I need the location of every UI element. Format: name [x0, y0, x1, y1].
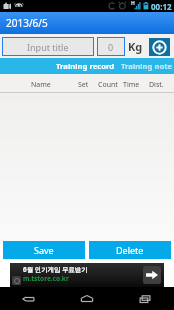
button[interactable]: Input title: [2, 37, 94, 56]
button[interactable]: Back: [0, 287, 58, 310]
staticText: H: [131, 0, 135, 7]
staticText: Training note: [121, 61, 173, 71]
staticText: 0: [108, 41, 114, 53]
button[interactable]: Save: [3, 241, 85, 259]
staticText: Training record: [56, 61, 115, 71]
staticText: Kg: [128, 39, 143, 54]
staticText: m.tstore.co.kr: [23, 274, 69, 283]
staticText: Delete: [116, 244, 144, 256]
staticText: 6월 인기게임 무료받기: [23, 265, 88, 274]
button[interactable]: 6월 인기게임 무료받기: [10, 263, 164, 287]
staticText: Count: [98, 80, 118, 90]
staticText: Dist.: [149, 80, 164, 90]
staticText: Save: [34, 244, 54, 256]
staticText: Time: [123, 80, 140, 90]
staticText: Set: [78, 80, 89, 90]
button[interactable]: 0: [97, 37, 125, 56]
staticText: Name: [31, 80, 51, 90]
button[interactable]: Training note: [120, 58, 174, 74]
button[interactable]: Go: [143, 266, 161, 284]
staticText: 00:12: [151, 1, 172, 12]
staticText: 2013/6/5: [6, 16, 48, 30]
button[interactable]: Delete: [89, 241, 171, 259]
button[interactable]: Home: [58, 287, 116, 310]
button[interactable]: Add: [149, 38, 170, 56]
staticText: Input title: [27, 41, 69, 53]
button[interactable]: Recents: [116, 287, 174, 310]
button[interactable]: Training record: [50, 58, 120, 74]
